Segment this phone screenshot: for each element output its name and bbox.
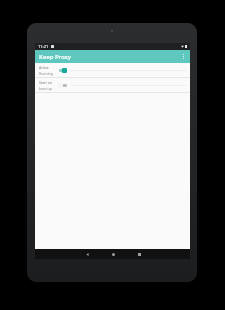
button[interactable]: Home bbox=[109, 250, 117, 258]
button[interactable]: Off bbox=[58, 81, 67, 89]
staticText: 11:21 bbox=[38, 44, 49, 49]
button[interactable]: On bbox=[58, 66, 67, 74]
button[interactable]: Active bbox=[35, 63, 190, 77]
staticText: boot up bbox=[39, 86, 52, 91]
staticText: Start on bbox=[39, 80, 53, 85]
button[interactable]: More options bbox=[178, 51, 189, 62]
staticText: Active bbox=[39, 65, 49, 70]
button[interactable]: Recent apps bbox=[135, 250, 143, 258]
button[interactable]: Back bbox=[83, 250, 91, 258]
staticText: Running bbox=[39, 71, 53, 76]
button[interactable]: Start on bbox=[35, 78, 190, 92]
staticText: Keep Proxy bbox=[39, 53, 72, 61]
